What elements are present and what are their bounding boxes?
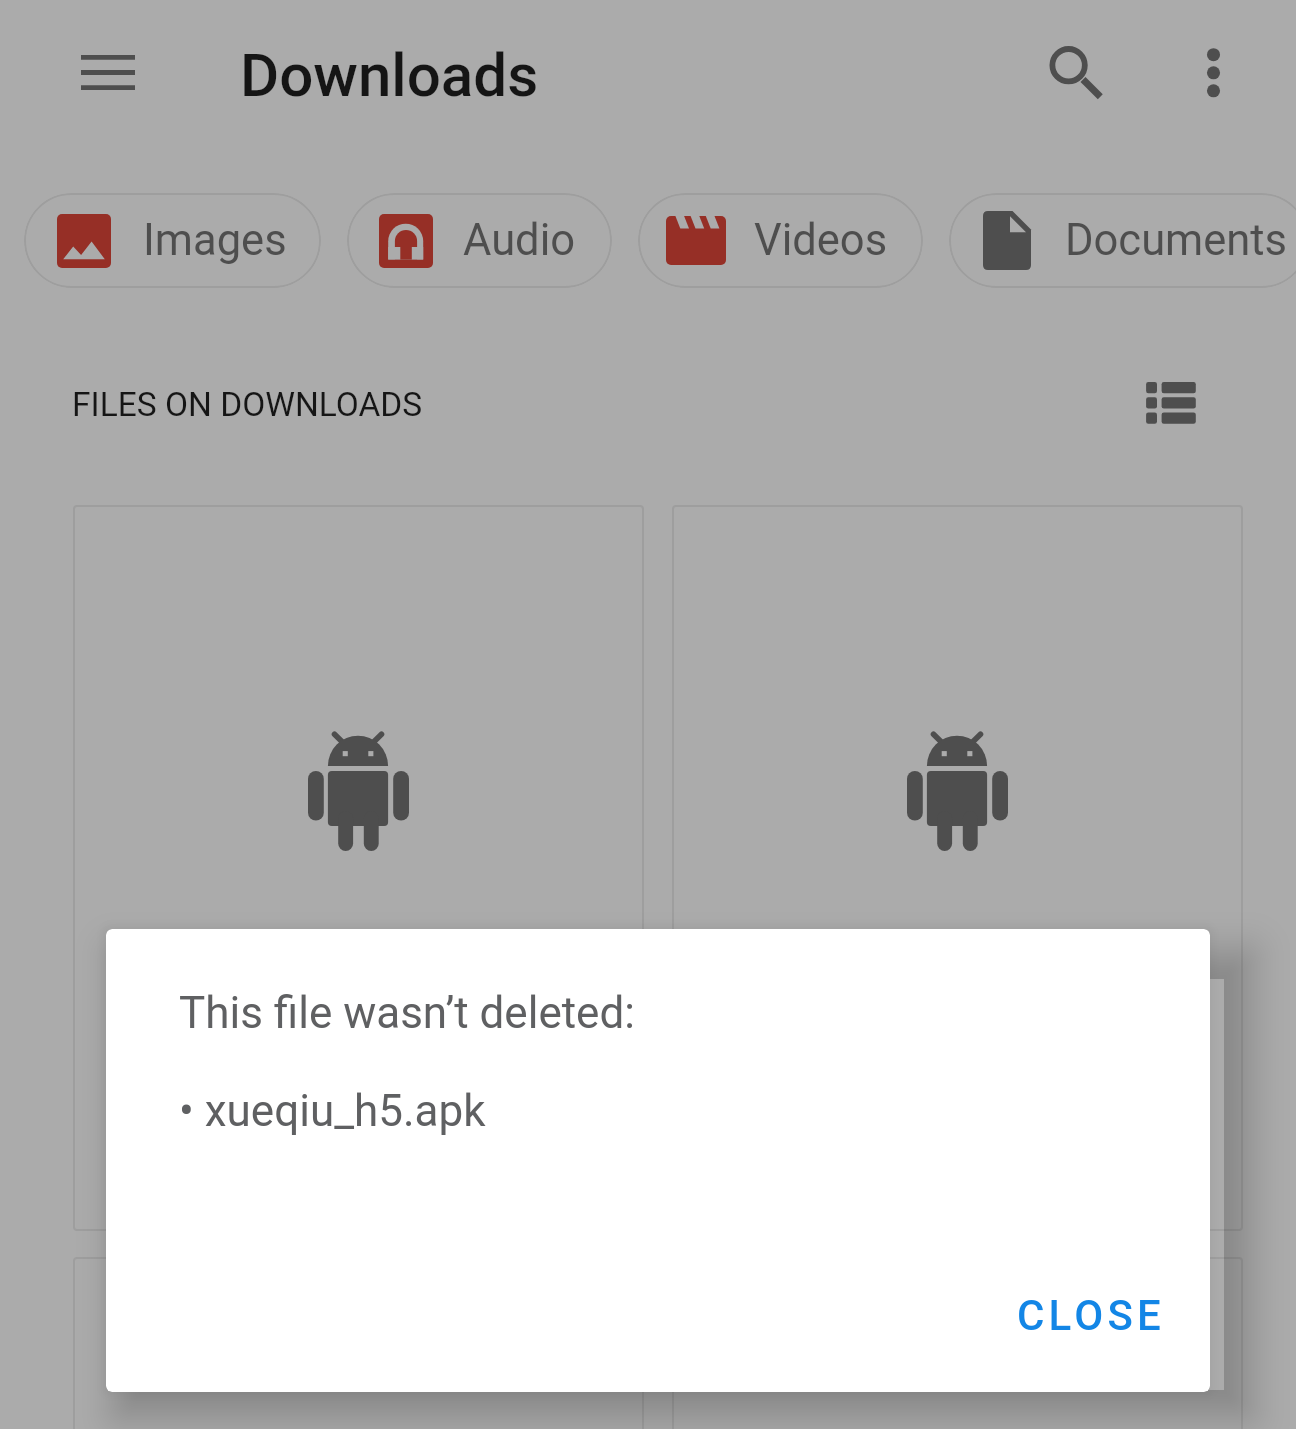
button[interactable]: More options [1168,20,1259,111]
button[interactable]: Documents [949,193,1296,288]
button[interactable] [672,505,1243,1231]
button[interactable]: Audio [347,193,612,288]
staticText: Downloads [240,40,539,110]
staticText: Images [143,215,287,266]
button[interactable] [73,1257,644,1429]
staticText: Documents [1065,215,1288,266]
button[interactable]: Videos [638,193,923,288]
button[interactable]: Search [1023,20,1114,111]
staticText: FILES ON DOWNLOADS [72,385,423,424]
button[interactable]: Switch to list view [1125,358,1215,448]
staticText: CLOSE [1017,1291,1165,1340]
button[interactable]: Images [24,193,321,288]
staticText: This file wasn’t deleted: [179,987,635,1039]
button[interactable]: CLOSE [986,1272,1196,1358]
button[interactable] [672,1257,1243,1429]
staticText: • xueqiu_h5.apk [179,1085,486,1137]
button[interactable]: Open navigation drawer [62,26,154,118]
button[interactable] [73,505,644,1231]
staticText: Videos [754,215,888,266]
staticText: Audio [463,215,576,266]
